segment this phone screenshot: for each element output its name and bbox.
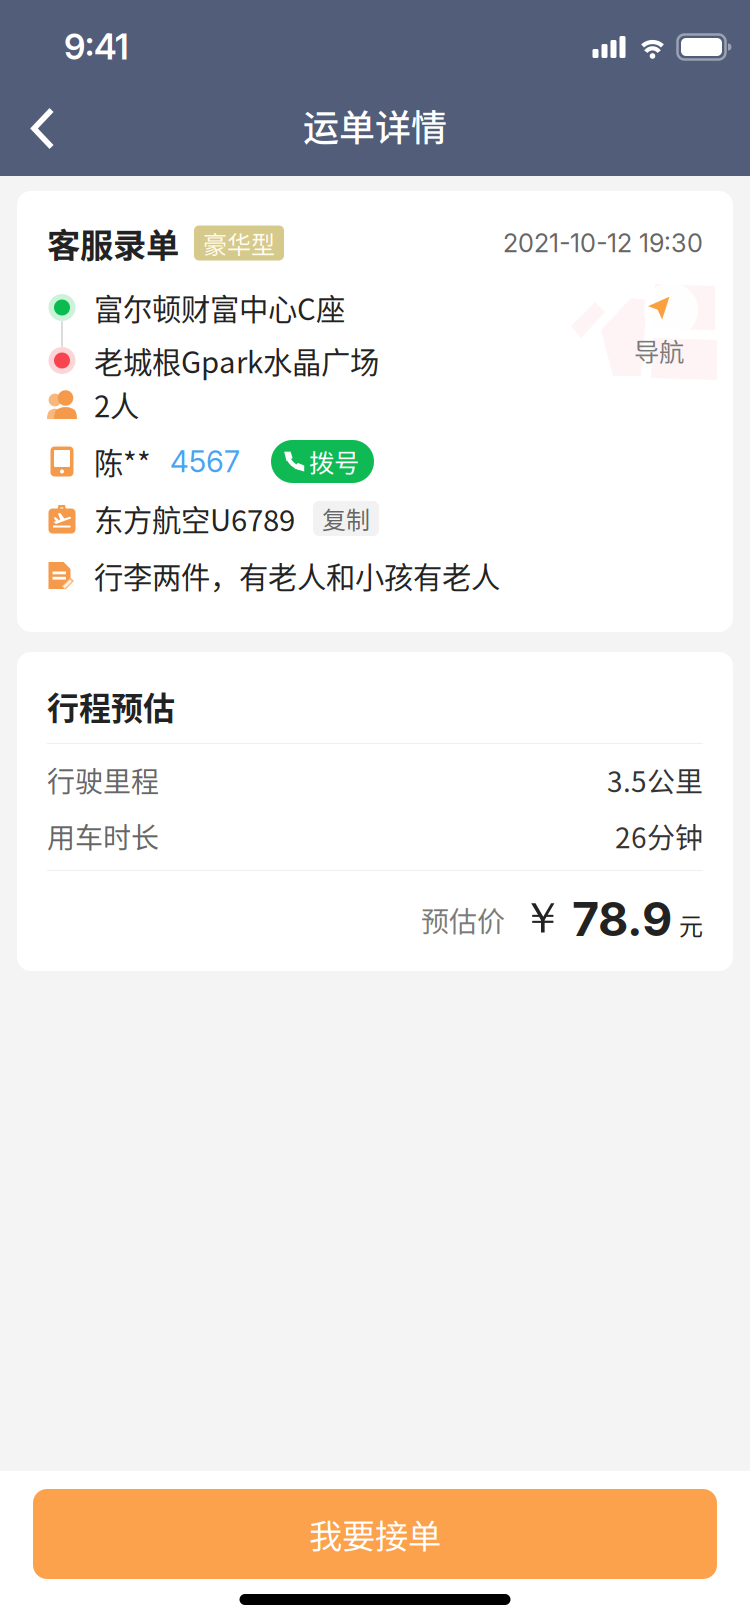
staticText: ￥: [521, 891, 564, 945]
staticText: 客服录单: [47, 219, 179, 267]
staticText: 行李两件，有老人和小孩有老人: [94, 554, 500, 597]
staticText: 3.5公里: [607, 760, 703, 800]
staticText: 9:41: [64, 26, 129, 68]
staticText: 2021-10-12 19:30: [503, 228, 703, 258]
staticText: 我要接单: [309, 1510, 441, 1558]
staticText: 行程预估: [47, 683, 175, 729]
staticText: 行驶里程: [47, 760, 159, 800]
staticText: 2人: [94, 383, 139, 426]
button[interactable]: 导航: [569, 272, 749, 392]
staticText: 元: [679, 907, 703, 942]
staticText: 东方航空U6789: [94, 497, 295, 540]
staticText: 豪华型: [203, 226, 275, 260]
button[interactable]: Back: [0, 91, 86, 165]
staticText: 用车时长: [47, 816, 159, 856]
staticText: 4567: [170, 444, 240, 479]
button[interactable]: 拨号: [271, 440, 374, 483]
staticText: 陈**: [94, 440, 151, 483]
staticText: 运单详情: [303, 99, 447, 151]
staticText: 导航: [634, 332, 684, 369]
staticText: 富尔顿财富中心C座: [94, 286, 345, 329]
staticText: 26分钟: [615, 816, 703, 856]
button[interactable]: 复制: [313, 501, 379, 536]
staticText: 拨号: [309, 443, 359, 480]
staticText: 老城根Gpark水晶广场: [94, 339, 379, 382]
button[interactable]: 我要接单: [33, 1489, 717, 1579]
staticText: 复制: [322, 501, 370, 536]
staticText: 预估价: [421, 900, 505, 940]
staticText: 78.9: [572, 891, 672, 947]
